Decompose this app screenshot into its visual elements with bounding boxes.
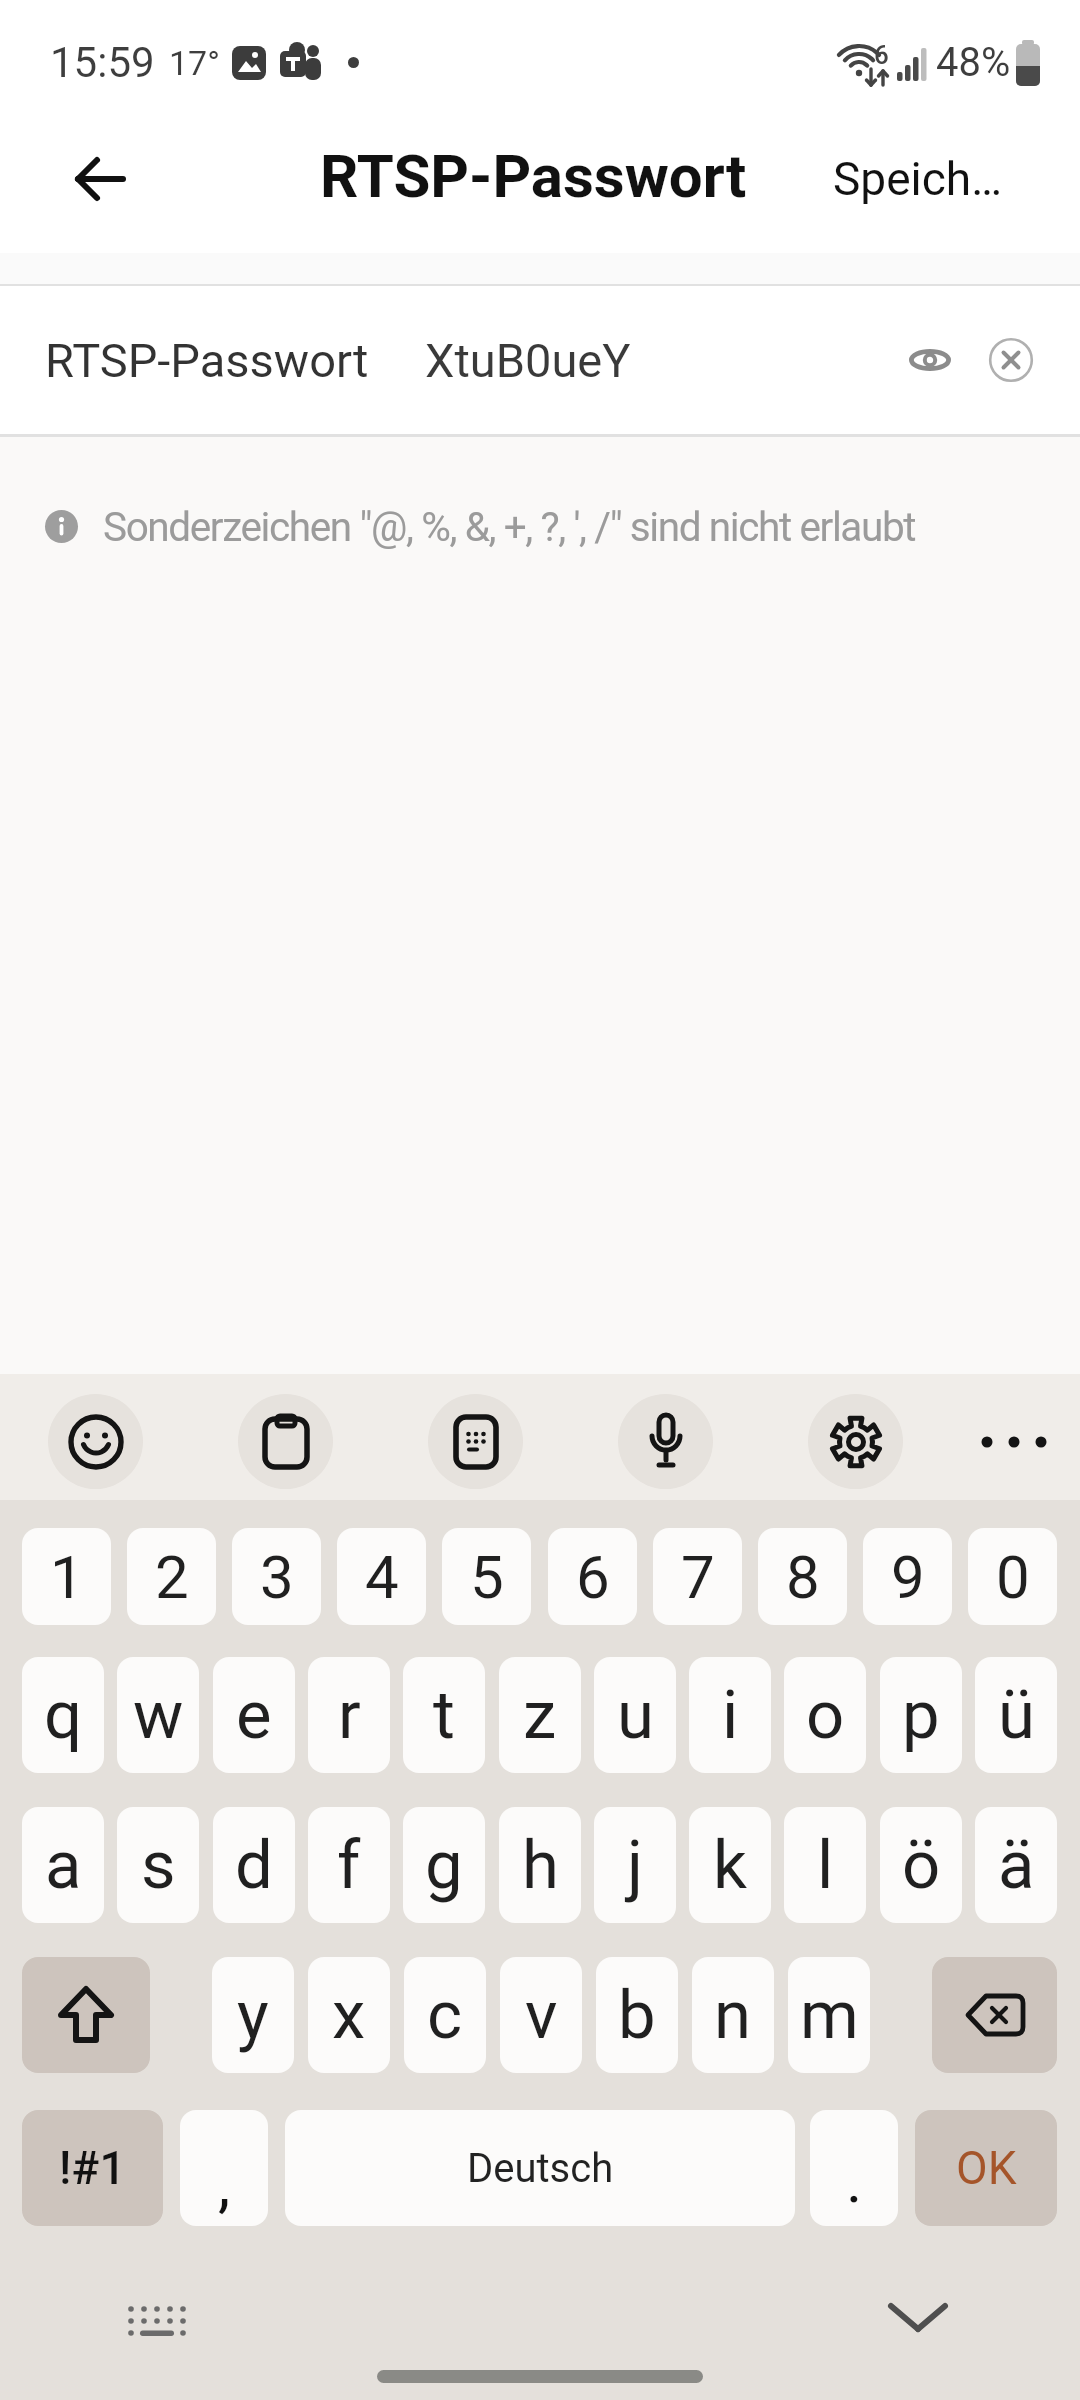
staticText: c xyxy=(427,1976,463,2055)
button[interactable] xyxy=(377,2370,703,2383)
button[interactable]: z xyxy=(499,1657,581,1773)
button[interactable]: c xyxy=(404,1957,486,2073)
staticText: n xyxy=(714,1976,752,2055)
button[interactable]: h xyxy=(499,1807,581,1923)
staticText: f xyxy=(337,1826,361,1905)
staticText: RTSP-Passwort xyxy=(45,333,369,388)
button[interactable]: t xyxy=(403,1657,485,1773)
staticText: m xyxy=(800,1976,859,2055)
button[interactable]: 0 xyxy=(968,1528,1057,1625)
staticText: r xyxy=(338,1676,361,1755)
staticText: u xyxy=(617,1676,654,1755)
button[interactable] xyxy=(55,134,145,224)
button[interactable]: l xyxy=(784,1807,866,1923)
button[interactable] xyxy=(618,1394,713,1489)
staticText: s xyxy=(141,1826,176,1905)
button[interactable]: k xyxy=(689,1807,771,1923)
button[interactable] xyxy=(238,1394,333,1489)
staticText: a xyxy=(45,1826,82,1905)
staticText: h xyxy=(522,1826,559,1905)
staticText: l xyxy=(817,1826,834,1905)
staticText: ä xyxy=(998,1826,1035,1905)
button[interactable] xyxy=(987,336,1035,384)
button[interactable]: d xyxy=(213,1807,295,1923)
button[interactable]: 7 xyxy=(653,1528,742,1625)
button[interactable]: v xyxy=(500,1957,582,2073)
button[interactable]: 6 xyxy=(548,1528,637,1625)
button[interactable]: RTSP-Passwort xyxy=(0,286,1080,434)
staticText: 4 xyxy=(365,1542,399,1612)
button[interactable]: o xyxy=(784,1657,866,1773)
button[interactable] xyxy=(428,1394,523,1489)
button[interactable]: g xyxy=(403,1807,485,1923)
staticText: OK xyxy=(956,2141,1017,2195)
button[interactable]: 5 xyxy=(442,1528,531,1625)
button[interactable] xyxy=(128,2305,190,2349)
button[interactable] xyxy=(966,1394,1061,1489)
staticText: 1 xyxy=(50,1542,84,1612)
button[interactable]: r xyxy=(308,1657,390,1773)
staticText: w xyxy=(133,1676,184,1755)
staticText: 2 xyxy=(155,1542,189,1612)
button[interactable]: 9 xyxy=(863,1528,952,1625)
button[interactable]: s xyxy=(117,1807,199,1923)
staticText: XtuB0ueY xyxy=(425,333,631,388)
button[interactable]: x xyxy=(308,1957,390,2073)
button[interactable] xyxy=(906,336,954,384)
button[interactable]: y xyxy=(212,1957,294,2073)
staticText: 9 xyxy=(891,1542,925,1612)
staticText: !#1 xyxy=(59,2141,126,2195)
button[interactable]: i xyxy=(689,1657,771,1773)
button[interactable]: u xyxy=(594,1657,676,1773)
staticText: t xyxy=(433,1676,455,1755)
button[interactable]: b xyxy=(596,1957,678,2073)
staticText: o xyxy=(806,1676,845,1755)
button[interactable] xyxy=(932,1957,1057,2073)
staticText: 5 xyxy=(470,1542,504,1612)
button[interactable]: 1 xyxy=(22,1528,111,1625)
staticText: i xyxy=(722,1676,739,1755)
button[interactable]: 4 xyxy=(337,1528,426,1625)
staticText: j xyxy=(627,1826,644,1905)
staticText: 6 xyxy=(874,40,889,70)
button[interactable]: a xyxy=(22,1807,104,1923)
button[interactable]: ä xyxy=(975,1807,1057,1923)
button[interactable]: , xyxy=(180,2110,268,2226)
button[interactable]: j xyxy=(594,1807,676,1923)
button[interactable]: e xyxy=(213,1657,295,1773)
button[interactable]: f xyxy=(308,1807,390,1923)
staticText: x xyxy=(332,1976,366,2055)
button[interactable]: Deutsch xyxy=(285,2110,795,2226)
button[interactable]: w xyxy=(117,1657,199,1773)
staticText: y xyxy=(237,1976,269,2055)
staticText: z xyxy=(523,1676,557,1755)
button[interactable] xyxy=(48,1394,143,1489)
button[interactable]: OK xyxy=(915,2110,1057,2226)
staticText: p xyxy=(902,1676,940,1755)
button[interactable]: ö xyxy=(880,1807,962,1923)
staticText: 3 xyxy=(260,1542,294,1612)
staticText: 6 xyxy=(576,1542,610,1612)
staticText: 48% xyxy=(936,39,1011,86)
staticText: RTSP-Passwort xyxy=(320,141,747,211)
staticText: 17° xyxy=(169,43,220,83)
button[interactable]: ü xyxy=(975,1657,1057,1773)
staticText: ö xyxy=(902,1826,941,1905)
button[interactable] xyxy=(888,2303,954,2369)
button[interactable]: n xyxy=(692,1957,774,2073)
staticText: e xyxy=(236,1676,272,1755)
button[interactable]: . xyxy=(810,2110,898,2226)
button[interactable] xyxy=(22,1957,150,2073)
button[interactable]: 2 xyxy=(127,1528,216,1625)
button[interactable]: !#1 xyxy=(22,2110,163,2226)
button[interactable] xyxy=(808,1394,903,1489)
button[interactable]: 8 xyxy=(758,1528,847,1625)
button[interactable]: p xyxy=(880,1657,962,1773)
button[interactable]: q xyxy=(22,1657,104,1773)
button[interactable]: 3 xyxy=(232,1528,321,1625)
staticText: v xyxy=(525,1976,558,2055)
staticText: Speich… xyxy=(833,152,1002,206)
staticText: g xyxy=(425,1826,463,1905)
button[interactable]: Speich… xyxy=(833,152,1002,206)
button[interactable]: m xyxy=(788,1957,870,2073)
